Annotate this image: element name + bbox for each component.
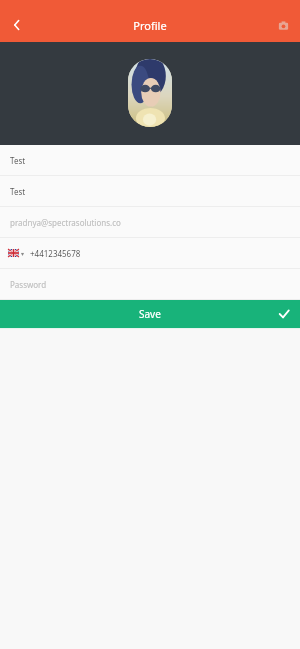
staticText: +4412345678 — [30, 248, 81, 259]
button[interactable]: Save — [0, 300, 300, 328]
staticText: Profile — [133, 18, 167, 33]
staticText: pradnya@spectrasolutions.co — [10, 217, 121, 228]
staticText: ▾ — [21, 250, 25, 257]
button[interactable]: ▾ — [0, 238, 300, 269]
staticText: Test — [10, 155, 26, 166]
staticText: Password — [10, 279, 47, 290]
button[interactable]: Profile photo — [128, 59, 172, 127]
button[interactable]: Test — [0, 176, 300, 207]
staticText: Save — [139, 307, 161, 321]
button[interactable]: Change photo — [266, 8, 300, 42]
button[interactable]: Test — [0, 145, 300, 176]
button[interactable]: pradnya@spectrasolutions.co — [0, 207, 300, 238]
button[interactable]: Password — [0, 269, 300, 300]
staticText: Test — [10, 186, 26, 197]
button[interactable]: Back — [0, 8, 34, 42]
